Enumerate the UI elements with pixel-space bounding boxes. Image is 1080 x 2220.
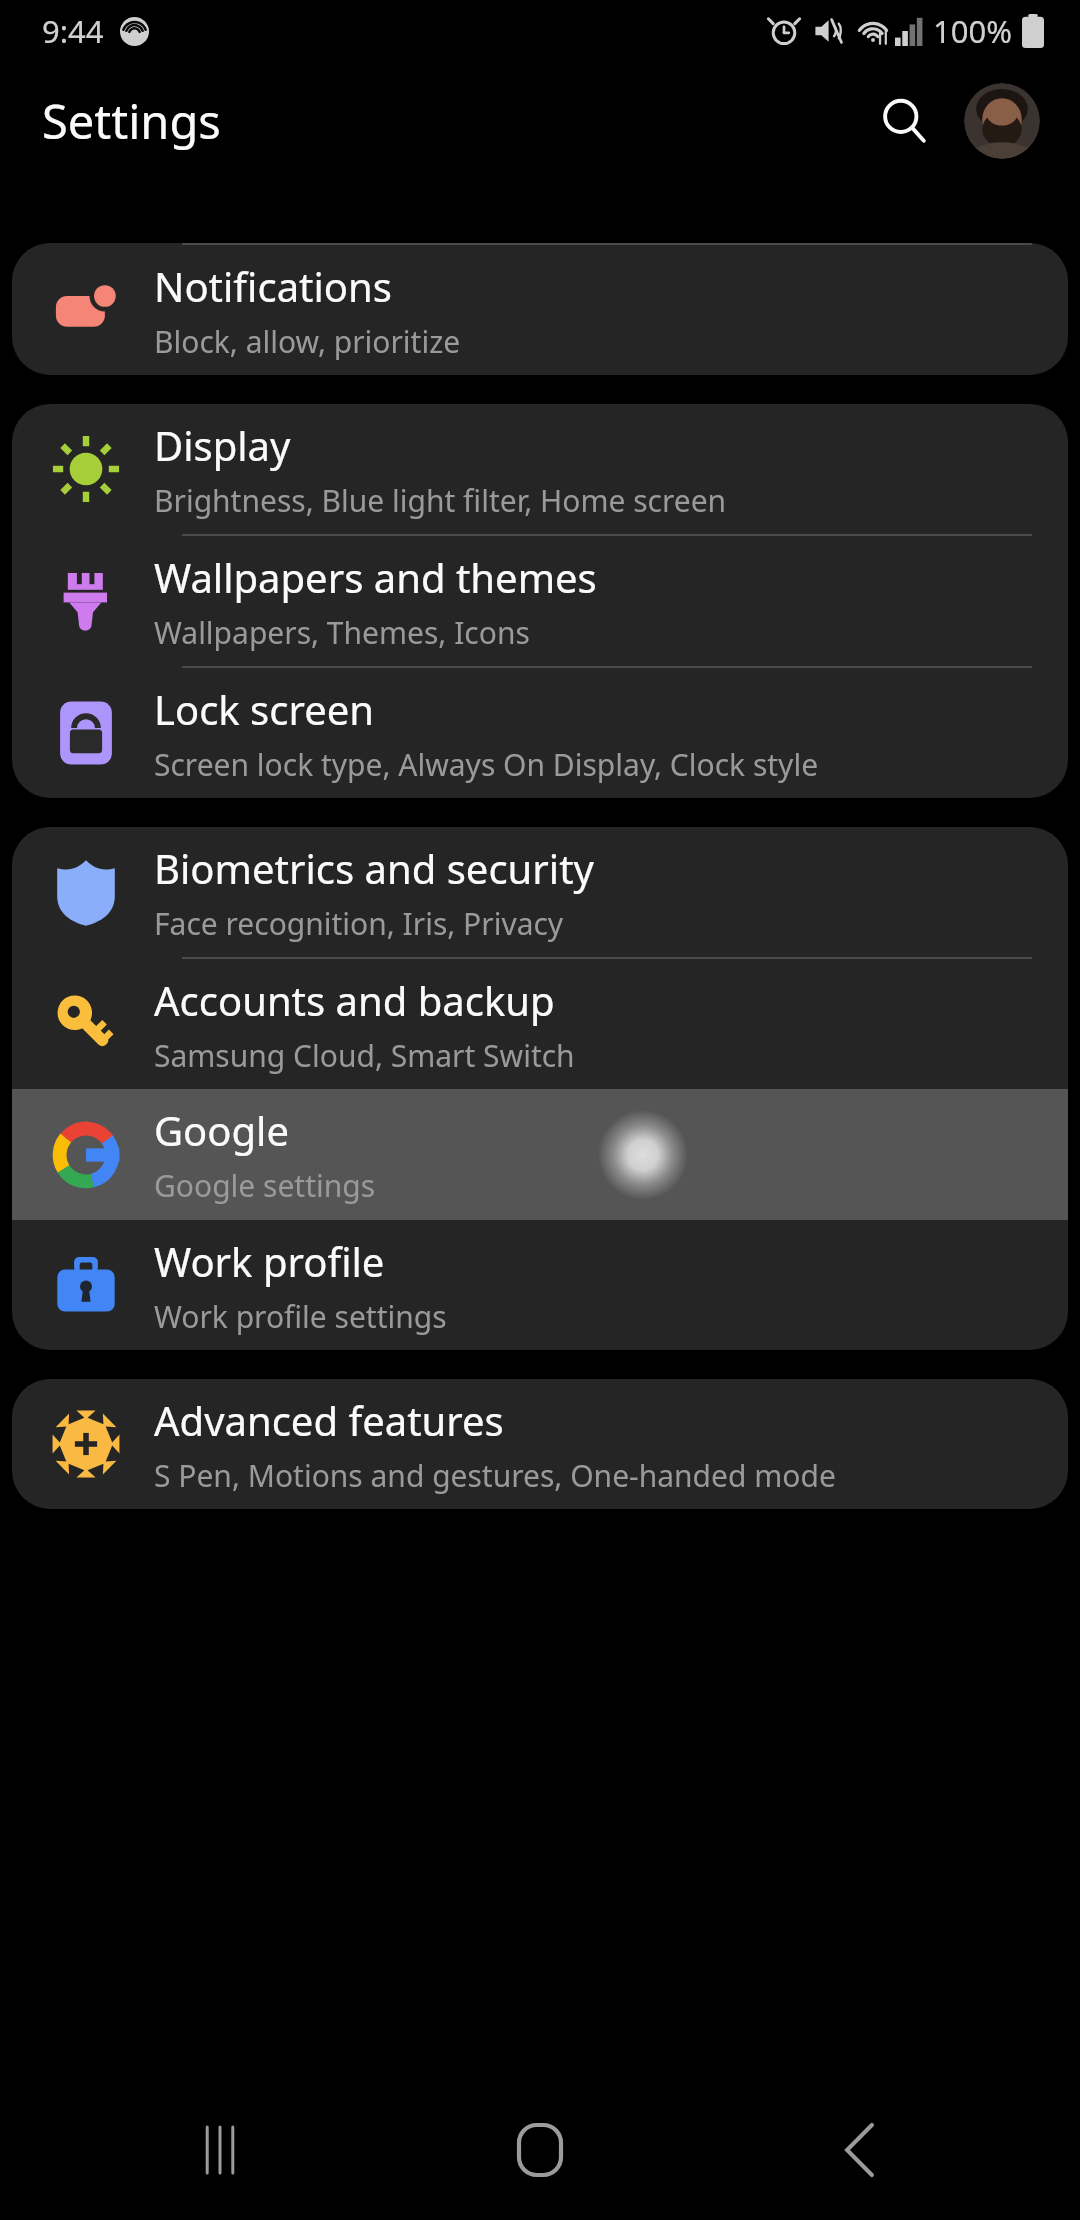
- staticText: Lock screen: [154, 682, 375, 736]
- button[interactable]: Account: [964, 83, 1040, 159]
- staticText: 9:44: [42, 10, 104, 52]
- staticText: Display: [154, 418, 291, 472]
- button[interactable]: Display: [12, 404, 1068, 534]
- staticText: Wallpapers, Themes, Icons: [154, 612, 530, 653]
- staticText: Settings: [42, 89, 221, 153]
- staticText: 100%: [933, 10, 1012, 52]
- staticText: Work profile settings: [154, 1296, 447, 1337]
- button[interactable]: Recent apps: [120, 2090, 320, 2210]
- staticText: Face recognition, Iris, Privacy: [154, 903, 564, 944]
- button[interactable]: Lock screen: [12, 668, 1068, 798]
- staticText: Google settings: [154, 1165, 376, 1206]
- staticText: Biometrics and security: [154, 841, 594, 895]
- staticText: S Pen, Motions and gestures, One-handed …: [154, 1455, 836, 1496]
- button[interactable]: Accounts and backup: [12, 959, 1068, 1089]
- button[interactable]: Advanced features: [12, 1379, 1068, 1509]
- staticText: Samsung Cloud, Smart Switch: [154, 1035, 575, 1076]
- button[interactable]: Back: [760, 2090, 960, 2210]
- button[interactable]: Search: [862, 79, 946, 163]
- staticText: Google: [154, 1103, 289, 1157]
- staticText: Advanced features: [154, 1393, 504, 1447]
- button[interactable]: Notifications: [12, 245, 1068, 375]
- staticText: Screen lock type, Always On Display, Clo…: [154, 744, 819, 785]
- staticText: Accounts and backup: [154, 973, 555, 1027]
- staticText: Wallpapers and themes: [154, 550, 597, 604]
- button[interactable]: Home: [440, 2090, 640, 2210]
- button[interactable]: Work profile: [12, 1220, 1068, 1350]
- staticText: Brightness, Blue light filter, Home scre…: [154, 480, 727, 521]
- staticText: Notifications: [154, 259, 392, 313]
- button[interactable]: Google: [12, 1089, 1068, 1220]
- staticText: Work profile: [154, 1234, 385, 1288]
- staticText: Block, allow, prioritize: [154, 321, 461, 362]
- button[interactable]: Biometrics and security: [12, 827, 1068, 957]
- button[interactable]: Wallpapers and themes: [12, 536, 1068, 666]
